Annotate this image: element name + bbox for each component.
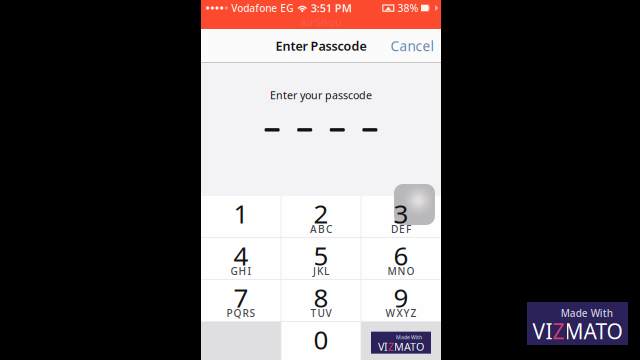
staticText: Vodafone EG bbox=[231, 1, 293, 15]
staticText: AirShou bbox=[300, 15, 342, 29]
staticText: 7 bbox=[233, 280, 248, 315]
button[interactable]: 0 bbox=[281, 322, 361, 360]
staticText: Z bbox=[388, 339, 394, 354]
staticText: 3 bbox=[393, 196, 408, 231]
staticText: A B C bbox=[310, 222, 332, 236]
staticText: J K L bbox=[313, 264, 329, 278]
staticText: VI bbox=[532, 317, 552, 345]
staticText: M N O bbox=[387, 264, 414, 278]
button[interactable]: Cancel bbox=[385, 29, 439, 63]
staticText: Enter Passcode bbox=[275, 38, 366, 54]
staticText: 0 bbox=[313, 322, 328, 357]
button[interactable]: 2 bbox=[281, 196, 361, 237]
staticText: 9 bbox=[393, 280, 408, 315]
staticText: MATO bbox=[394, 339, 424, 354]
staticText: D E F bbox=[391, 222, 411, 236]
button[interactable]: 6 bbox=[361, 238, 441, 279]
staticText: Cancel bbox=[390, 37, 434, 55]
staticText: 3 bbox=[393, 196, 408, 231]
staticText: Enter your passcode bbox=[270, 88, 372, 102]
button[interactable]: 1 bbox=[201, 196, 281, 237]
button[interactable]: 4 bbox=[201, 238, 281, 279]
staticText: G H I bbox=[230, 264, 251, 278]
staticText: Z bbox=[552, 317, 564, 345]
staticText: MATO bbox=[564, 317, 622, 345]
staticText: 1 bbox=[233, 196, 248, 231]
button[interactable]: 3 bbox=[361, 196, 441, 237]
button[interactable]: 9 bbox=[361, 280, 441, 321]
staticText: 2 bbox=[313, 196, 328, 231]
button[interactable]: 8 bbox=[281, 280, 361, 321]
staticText: 4 bbox=[233, 238, 248, 273]
staticText: W X Y Z bbox=[385, 306, 416, 320]
staticText: Made With bbox=[396, 334, 422, 341]
staticText: 5 bbox=[313, 238, 328, 273]
staticText: 3:51 PM bbox=[311, 1, 352, 15]
button[interactable]: 5 bbox=[281, 238, 361, 279]
staticText: 8 bbox=[313, 280, 328, 315]
button[interactable]: 7 bbox=[201, 280, 281, 321]
staticText: P Q R S bbox=[226, 306, 255, 320]
staticText: Made With bbox=[561, 306, 613, 320]
staticText: 6 bbox=[393, 238, 408, 273]
staticText: T U V bbox=[310, 306, 331, 320]
staticText: VI bbox=[378, 339, 388, 354]
staticText: 38% bbox=[397, 1, 418, 15]
